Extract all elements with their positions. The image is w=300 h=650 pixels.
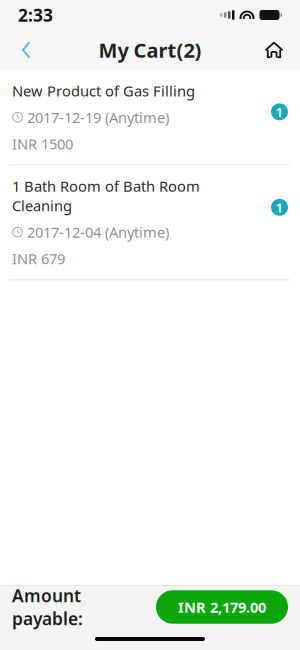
staticText: 1 — [275, 103, 283, 121]
staticText: Amount payable: — [12, 584, 83, 630]
button[interactable]: INR 2,179.00 — [156, 590, 288, 624]
staticText: INR 1500 — [12, 134, 73, 153]
staticText: My Cart(2) — [98, 37, 201, 63]
staticText: 2:33 — [18, 3, 53, 26]
button[interactable]: Home — [252, 30, 296, 70]
staticText: 1 Bath Room of Bath Room Cleaning — [12, 176, 200, 215]
staticText: 2017-12-19 (Anytime) — [27, 107, 169, 127]
button[interactable]: New Product of Gas Filling — [0, 70, 300, 164]
staticText: New Product of Gas Filling — [12, 81, 195, 100]
staticText: 2017-12-04 (Anytime) — [27, 222, 169, 242]
staticText: INR 2,179.00 — [178, 597, 266, 617]
staticText: 1 — [275, 198, 283, 216]
staticText: INR 679 — [12, 249, 65, 268]
button[interactable]: 1 Bath Room of Bath Room Cleaning — [0, 165, 300, 279]
button[interactable]: Back — [4, 30, 48, 70]
